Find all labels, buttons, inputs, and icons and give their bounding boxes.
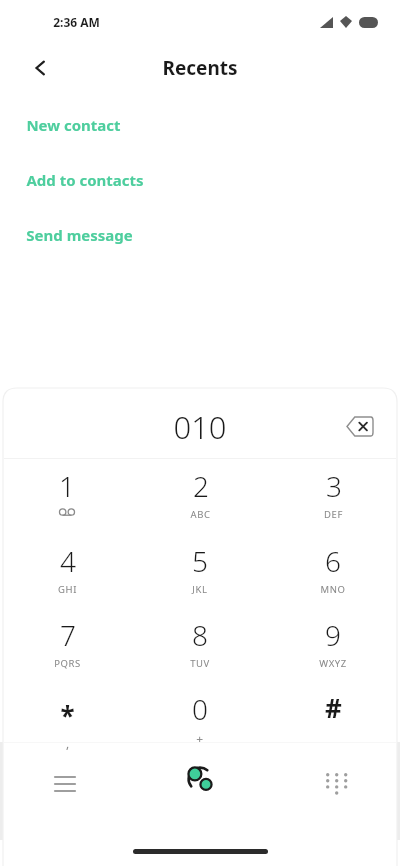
staticText: WXYZ [319, 657, 347, 670]
button[interactable]: Back [24, 51, 58, 85]
staticText: , [66, 735, 70, 751]
staticText: 6 [325, 542, 341, 580]
button[interactable]: 1 [12, 463, 122, 533]
button[interactable]: * [12, 686, 122, 756]
staticText: JKL [192, 583, 208, 596]
button[interactable]: # [278, 686, 388, 756]
staticText: 2 [193, 467, 209, 505]
staticText: New contact [26, 115, 121, 135]
staticText: Add to contacts [26, 170, 144, 190]
staticText: 1 [59, 467, 75, 505]
button[interactable]: 7 [12, 612, 122, 682]
button[interactable]: New contact [0, 110, 400, 140]
button[interactable]: 5 [145, 538, 255, 608]
staticText: 0 [192, 690, 208, 728]
staticText: # [325, 690, 342, 725]
button[interactable]: 0 [145, 686, 255, 756]
button[interactable]: 9 [278, 612, 388, 682]
staticText: 4 [60, 542, 76, 580]
staticText: 8 [192, 616, 208, 654]
staticText: + [196, 731, 204, 747]
button[interactable]: Backspace [338, 404, 382, 448]
button[interactable]: 4 [12, 538, 122, 608]
button[interactable]: Dialpad [312, 761, 358, 807]
button[interactable]: Call log menu [42, 761, 88, 807]
staticText: ABC [190, 508, 211, 521]
button[interactable]: Call [171, 750, 229, 808]
button[interactable]: 6 [278, 538, 388, 608]
staticText: MNO [320, 583, 346, 596]
staticText: 2:36 AM [53, 14, 100, 30]
staticText: Recents [162, 55, 238, 81]
staticText: 5 [192, 542, 208, 580]
staticText: 9 [325, 616, 341, 654]
button[interactable]: 8 [145, 612, 255, 682]
staticText: 7 [60, 616, 76, 654]
staticText: Send message [26, 225, 133, 245]
button[interactable]: 3 [278, 463, 388, 533]
staticText: 010 [173, 406, 227, 448]
staticText: PQRS [54, 657, 81, 670]
button[interactable]: 2 [145, 463, 255, 533]
staticText: DEF [324, 508, 343, 521]
button[interactable]: Add to contacts [0, 165, 400, 195]
staticText: TUV [190, 657, 210, 670]
staticText: GHI [58, 583, 77, 596]
staticText: * [60, 698, 75, 733]
button[interactable]: Send message [0, 220, 400, 250]
staticText: 3 [326, 467, 342, 505]
